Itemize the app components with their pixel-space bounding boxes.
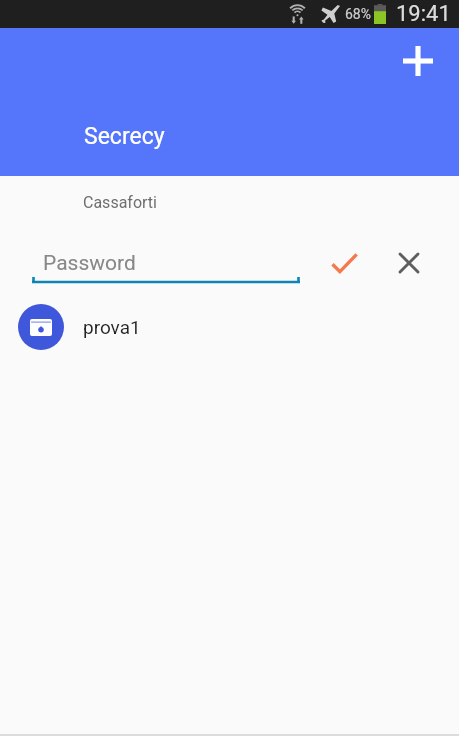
staticText: Password [43,251,136,276]
button[interactable]: Password [32,251,300,291]
button[interactable]: Confirm [322,241,366,285]
staticText: 68% [345,6,371,22]
staticText: 19:41 [396,1,451,27]
button[interactable]: prova1 [0,297,459,357]
staticText: prova1 [83,316,141,338]
staticText: Secrecy [84,123,165,150]
button[interactable]: Add safe [394,37,442,85]
button[interactable]: Cancel [387,241,431,285]
staticText: Cassaforti [83,193,157,212]
